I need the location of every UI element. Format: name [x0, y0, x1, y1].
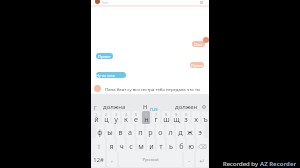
staticText: ц [104, 114, 109, 124]
staticText: 1 [95, 112, 98, 117]
button[interactable]: ы [106, 124, 114, 138]
staticText: Папа Каят су вся сестра тебя передала чт… [105, 86, 209, 92]
button[interactable]: 4 [122, 111, 130, 124]
staticText: и [149, 141, 154, 151]
staticText: р [148, 127, 153, 137]
staticText: Г [94, 104, 97, 111]
staticText: , [111, 156, 113, 164]
button[interactable]: 8 [162, 111, 170, 124]
staticText: . [188, 156, 190, 164]
staticText: д [178, 127, 183, 137]
staticText: Чат [102, 0, 109, 5]
staticText: AZ Recorder [260, 160, 297, 168]
button[interactable]: должен [175, 103, 198, 111]
staticText: ъ [203, 114, 208, 124]
other: Profile [95, 0, 100, 4]
staticText: 6 [145, 112, 148, 117]
button[interactable]: ю [187, 138, 195, 152]
staticText: Привет [191, 63, 204, 68]
button[interactable]: п [136, 124, 144, 138]
button[interactable]: Привет [96, 53, 113, 59]
button[interactable]: 5 [132, 111, 140, 124]
button[interactable]: ъ [202, 111, 208, 124]
staticText: ю [188, 141, 194, 151]
button[interactable]: ⌫ [197, 138, 208, 152]
button[interactable]: в [116, 124, 124, 138]
button[interactable]: х [192, 111, 200, 124]
staticText: ш [163, 114, 170, 124]
staticText: ч [119, 141, 124, 151]
button[interactable]: Profile [91, 0, 209, 5]
button[interactable]: , [107, 151, 117, 167]
button[interactable]: л [166, 124, 174, 138]
staticText: т [159, 141, 163, 151]
staticText: должна [103, 103, 126, 111]
button[interactable]: ↵ [196, 151, 208, 167]
button[interactable]: о [156, 124, 164, 138]
button[interactable]: б [177, 138, 185, 152]
staticText: ы [107, 127, 113, 137]
staticText: ⇧ [96, 143, 102, 150]
staticText: Олег [194, 42, 203, 47]
button[interactable]: ⇧ [92, 138, 105, 152]
button[interactable]: 7 [152, 111, 160, 124]
staticText: э [198, 127, 202, 137]
button[interactable]: ф [96, 124, 104, 138]
button[interactable]: я [107, 138, 115, 152]
button[interactable]: и [147, 138, 155, 152]
button[interactable]: а [126, 124, 134, 138]
staticText: 8 [165, 112, 168, 117]
staticText: 4 [125, 112, 128, 117]
staticText: 3 [115, 112, 118, 117]
button[interactable]: т [157, 138, 165, 152]
button[interactable]: 2 [102, 111, 110, 124]
button[interactable]: Привет [190, 62, 204, 68]
button[interactable]: с [127, 138, 135, 152]
staticText: у [114, 114, 118, 124]
button[interactable]: должна [103, 103, 126, 111]
staticText: Ну ты чего пропал? [96, 73, 126, 78]
button[interactable]: ж [186, 124, 194, 138]
button[interactable]: 12# [92, 151, 105, 167]
button[interactable]: Русский [119, 151, 182, 167]
staticText: в [118, 127, 123, 137]
staticText: к [124, 114, 128, 124]
button[interactable]: 3 [112, 111, 120, 124]
staticText: м [138, 141, 144, 151]
staticText: Recorded by [223, 160, 258, 168]
button[interactable]: 6 [142, 111, 150, 124]
button[interactable]: ч [117, 138, 125, 152]
staticText: е [134, 114, 138, 124]
staticText: н [144, 114, 149, 124]
staticText: л [168, 127, 173, 137]
button[interactable]: Emoji [202, 105, 206, 109]
staticText: ь [169, 141, 173, 151]
button[interactable]: 9 [172, 111, 180, 124]
staticText: 9 [175, 112, 178, 117]
staticText: й [94, 114, 99, 124]
button[interactable]: ь [167, 138, 175, 152]
staticText: 12# [93, 156, 104, 164]
button[interactable]: Ну ты чего пропал? [96, 72, 126, 78]
staticText: 0 [185, 112, 188, 117]
staticText: щ [173, 114, 180, 124]
staticText: б [179, 141, 184, 151]
staticText: х [194, 114, 198, 124]
button[interactable]: 0 [182, 111, 190, 124]
staticText: Привет [98, 54, 111, 59]
staticText: 2 [105, 112, 108, 117]
staticText: ⌫ [198, 143, 207, 150]
staticText: а [128, 127, 132, 137]
staticText: з [184, 114, 188, 124]
staticText: Н [143, 103, 148, 111]
button[interactable]: Олег [192, 41, 205, 47]
button[interactable]: д [176, 124, 184, 138]
button[interactable]: м [137, 138, 145, 152]
button[interactable]: р [146, 124, 154, 138]
button[interactable]: э [196, 124, 204, 138]
button[interactable]: Папа Каят су вся сестра тебя передала чт… [91, 84, 209, 93]
staticText: г [154, 114, 158, 124]
button[interactable]: 1 [92, 111, 100, 124]
